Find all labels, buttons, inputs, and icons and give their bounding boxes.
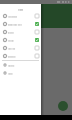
staticText: About [8,72,13,74]
staticText: Settings [8,65,15,67]
staticText: Tags [18,7,24,10]
staticText: New York [8,48,16,50]
button[interactable]: About [0,69,41,77]
button[interactable]: department store [0,20,41,28]
staticText: Amsterdam [8,16,17,18]
button[interactable]: Amsterdam [0,12,41,20]
staticText: New York [8,47,16,49]
staticText: Tags [18,8,24,11]
staticText: London [8,39,14,41]
button[interactable]: Add tag [58,101,68,111]
button[interactable]: grocery [0,28,41,36]
staticText: London [8,40,14,42]
staticText: pharmacy [8,55,16,57]
staticText: Amsterdam [8,15,17,17]
staticText: grocery [8,32,14,34]
staticText: pharmacy [8,56,16,58]
button[interactable]: Settings [0,61,41,69]
staticText: department store [8,24,22,26]
staticText: Settings [8,64,15,66]
button[interactable]: New York [0,44,41,52]
button[interactable]: pharmacy [0,52,41,60]
button[interactable]: London [0,36,41,44]
staticText: grocery [8,31,14,33]
staticText: department store [8,23,22,25]
staticText: About [8,73,13,75]
